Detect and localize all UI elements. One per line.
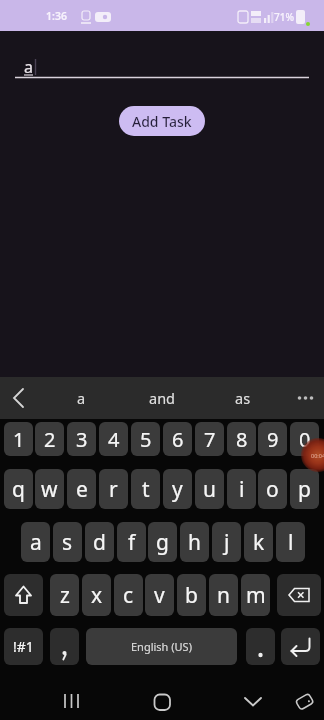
- button[interactable]: u: [195, 469, 224, 509]
- button[interactable]: n: [209, 574, 238, 616]
- button[interactable]: and: [131, 377, 193, 419]
- button[interactable]: 0: [290, 422, 319, 456]
- button[interactable]: English (US): [86, 628, 237, 665]
- staticText: t: [142, 475, 150, 504]
- staticText: 8: [236, 426, 248, 453]
- staticText: f: [128, 528, 136, 557]
- button[interactable]: 9: [258, 422, 287, 456]
- button[interactable]: k: [244, 522, 273, 562]
- button[interactable]: as: [212, 377, 274, 419]
- staticText: i: [239, 475, 245, 504]
- button[interactable]: p: [290, 469, 319, 509]
- staticText: q: [12, 475, 25, 504]
- staticText: 9: [267, 426, 279, 453]
- staticText: r: [109, 475, 118, 504]
- button[interactable]: 7: [195, 422, 224, 456]
- button[interactable]: 2: [35, 422, 64, 456]
- button[interactable]: [282, 377, 324, 419]
- button[interactable]: c: [114, 574, 143, 616]
- button[interactable]: [47, 677, 95, 720]
- button[interactable]: g: [148, 522, 177, 562]
- button[interactable]: m: [241, 574, 270, 616]
- staticText: a: [77, 388, 86, 408]
- staticText: 00:04: [311, 452, 324, 459]
- button[interactable]: [286, 677, 324, 720]
- button[interactable]: [246, 628, 275, 665]
- button[interactable]: v: [145, 574, 174, 616]
- button[interactable]: d: [85, 522, 114, 562]
- staticText: h: [188, 528, 201, 557]
- staticText: 6: [172, 426, 184, 453]
- button[interactable]: [50, 628, 79, 665]
- staticText: z: [60, 581, 70, 610]
- button[interactable]: 4: [99, 422, 128, 456]
- staticText: English (US): [131, 639, 192, 654]
- staticText: 3: [76, 426, 88, 453]
- staticText: s: [62, 528, 73, 557]
- button[interactable]: l: [276, 522, 305, 562]
- button[interactable]: a: [21, 522, 50, 562]
- staticText: k: [253, 528, 265, 557]
- button[interactable]: t: [131, 469, 160, 509]
- button[interactable]: j: [212, 522, 241, 562]
- button[interactable]: x: [82, 574, 111, 616]
- button[interactable]: b: [177, 574, 206, 616]
- button[interactable]: [0, 377, 40, 419]
- staticText: 1:36: [46, 9, 67, 23]
- staticText: and: [149, 388, 176, 408]
- button[interactable]: q: [4, 469, 33, 509]
- staticText: c: [123, 581, 134, 610]
- button[interactable]: w: [35, 469, 64, 509]
- button[interactable]: i: [227, 469, 256, 509]
- button[interactable]: [277, 574, 321, 616]
- staticText: x: [91, 581, 103, 610]
- staticText: e: [76, 475, 88, 504]
- staticText: 7: [204, 426, 216, 453]
- staticText: !#1: [13, 637, 34, 656]
- button[interactable]: h: [180, 522, 209, 562]
- staticText: a: [24, 56, 33, 78]
- button[interactable]: a: [50, 377, 112, 419]
- staticText: 0: [299, 426, 311, 453]
- staticText: w: [41, 475, 58, 504]
- staticText: v: [154, 581, 165, 610]
- button[interactable]: 3: [67, 422, 96, 456]
- staticText: u: [203, 475, 216, 504]
- staticText: a: [30, 528, 42, 557]
- staticText: j: [224, 528, 230, 557]
- button[interactable]: 5: [131, 422, 160, 456]
- button[interactable]: [281, 628, 320, 665]
- button[interactable]: [138, 677, 186, 720]
- button[interactable]: Add Task: [119, 106, 205, 136]
- staticText: o: [266, 475, 279, 504]
- staticText: 2: [44, 426, 56, 453]
- button[interactable]: y: [163, 469, 192, 509]
- button[interactable]: f: [117, 522, 146, 562]
- staticText: g: [156, 528, 169, 557]
- staticText: n: [217, 581, 230, 610]
- staticText: m: [246, 581, 266, 610]
- button[interactable]: 00:04: [301, 438, 324, 472]
- staticText: d: [93, 528, 106, 557]
- staticText: p: [298, 475, 311, 504]
- staticText: 4: [108, 426, 120, 453]
- button[interactable]: [4, 574, 43, 616]
- staticText: y: [172, 475, 183, 504]
- staticText: as: [235, 388, 251, 408]
- button[interactable]: !#1: [4, 628, 43, 665]
- button[interactable]: o: [258, 469, 287, 509]
- button[interactable]: e: [67, 469, 96, 509]
- button[interactable]: s: [53, 522, 82, 562]
- staticText: b: [185, 581, 198, 610]
- staticText: 71%: [274, 10, 294, 24]
- button[interactable]: z: [50, 574, 79, 616]
- button[interactable]: 1: [4, 422, 33, 456]
- staticText: 1: [13, 426, 25, 453]
- button[interactable]: [229, 677, 277, 720]
- staticText: l: [288, 528, 294, 557]
- staticText: 5: [140, 426, 152, 453]
- button[interactable]: 6: [163, 422, 192, 456]
- button[interactable]: r: [99, 469, 128, 509]
- staticText: Add Task: [132, 112, 192, 131]
- button[interactable]: 8: [227, 422, 256, 456]
